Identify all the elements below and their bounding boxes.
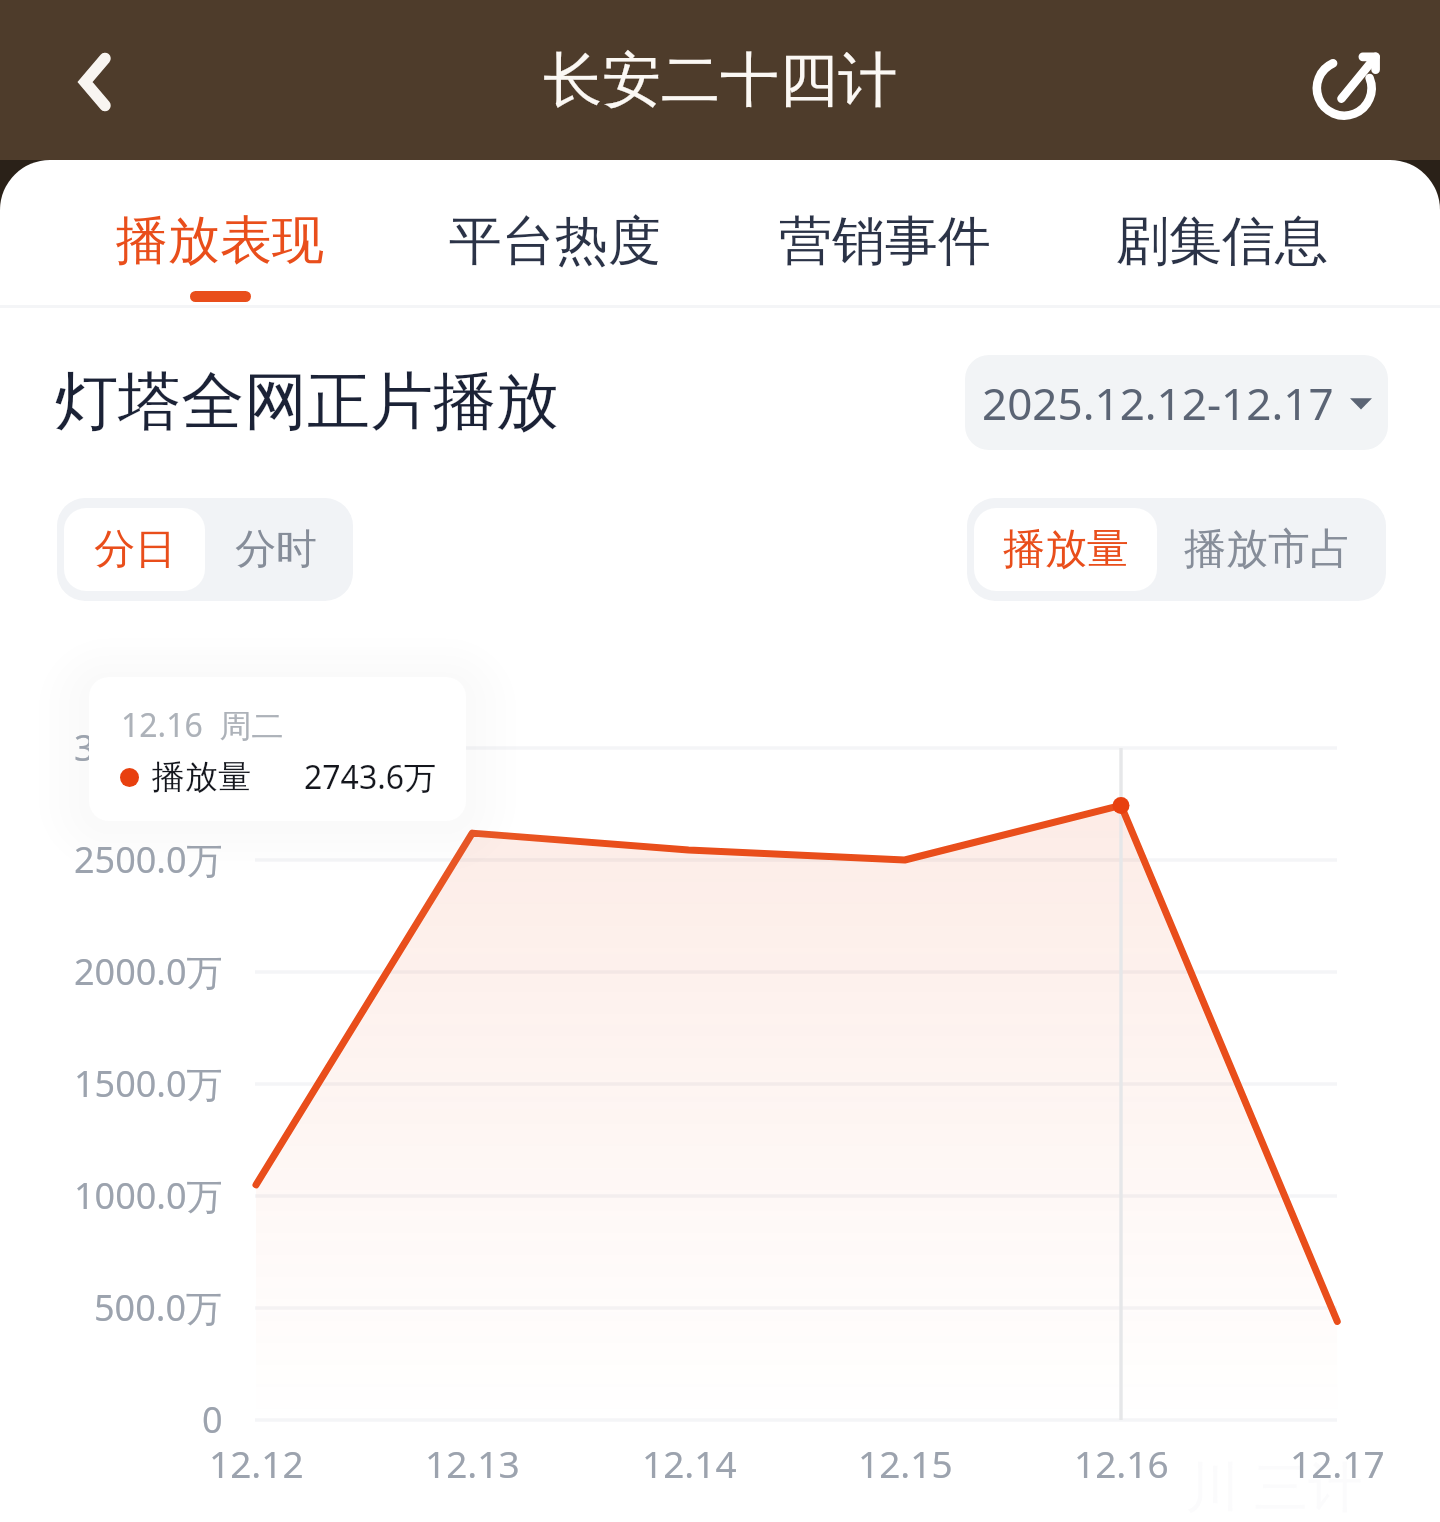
staticText: 分日 xyxy=(94,524,176,576)
staticText: 剧集信息 xyxy=(1116,208,1328,275)
staticText: 播放量 xyxy=(1003,523,1129,576)
staticText: 500.0万 xyxy=(94,1283,223,1332)
staticText: 营销事件 xyxy=(779,208,991,275)
button[interactable]: 分日 xyxy=(64,508,205,591)
staticText: 12.14 xyxy=(642,1438,737,1488)
staticText: 1000.0万 xyxy=(74,1171,223,1220)
button[interactable]: Share xyxy=(1303,39,1391,127)
button[interactable]: 剧集信息 xyxy=(1102,160,1342,308)
button[interactable]: 播放表现 xyxy=(100,160,340,308)
staticText: 12.17 xyxy=(1290,1438,1385,1488)
staticText: 长安二十四计 xyxy=(543,43,897,117)
staticText: 2743.6万 xyxy=(304,755,437,799)
button[interactable]: 播放市占 xyxy=(1157,508,1379,591)
staticText: 12.16 xyxy=(1074,1438,1169,1488)
staticText: 12.12 xyxy=(209,1438,304,1488)
staticText: 12.16 周二 xyxy=(121,703,284,747)
staticText: 2025.12.12-12.17 xyxy=(982,373,1334,433)
staticText: 播放量 xyxy=(152,756,251,798)
staticText: 12.13 xyxy=(425,1438,520,1488)
staticText: 分时 xyxy=(235,524,317,576)
staticText: 0 xyxy=(202,1395,223,1444)
staticText: 播放市占 xyxy=(1184,523,1352,576)
staticText: 1500.0万 xyxy=(74,1059,223,1108)
staticText: 平台热度 xyxy=(449,208,661,275)
staticText: 12.15 xyxy=(858,1438,953,1488)
staticText: 2500.0万 xyxy=(74,835,223,884)
button[interactable]: 播放量 xyxy=(974,508,1157,591)
staticText: 2000.0万 xyxy=(74,947,223,996)
button[interactable]: 2025.12.12-12.17 xyxy=(965,355,1388,450)
button[interactable]: 营销事件 xyxy=(765,160,1005,308)
staticText: 川 三计 xyxy=(1186,1448,1363,1522)
staticText: 播放表现 xyxy=(116,208,324,274)
button[interactable]: 分时 xyxy=(205,508,346,591)
staticText: 3000.0万 xyxy=(74,723,223,772)
staticText: 灯塔全网正片播放 xyxy=(55,362,559,441)
button[interactable]: 平台热度 xyxy=(435,160,675,308)
button[interactable]: Back xyxy=(51,38,139,126)
